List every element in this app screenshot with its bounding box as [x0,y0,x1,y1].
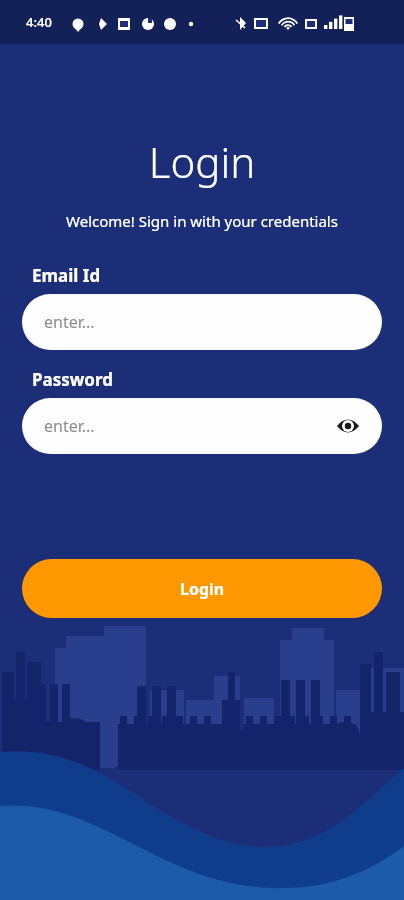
staticText: Welcome! Sign in with your credentials [22,211,382,231]
button[interactable]: Show password [334,412,362,440]
button[interactable]: enter... [22,294,382,350]
staticText: enter... [44,415,334,437]
staticText: 4:40 [26,13,52,31]
staticText: Email Id [32,264,101,287]
staticText: enter... [44,311,362,333]
staticText: Login [22,133,382,190]
button[interactable]: Login [22,559,382,618]
staticText: Login [180,578,225,600]
staticText: Password [32,368,113,391]
button[interactable]: enter... [22,398,382,454]
